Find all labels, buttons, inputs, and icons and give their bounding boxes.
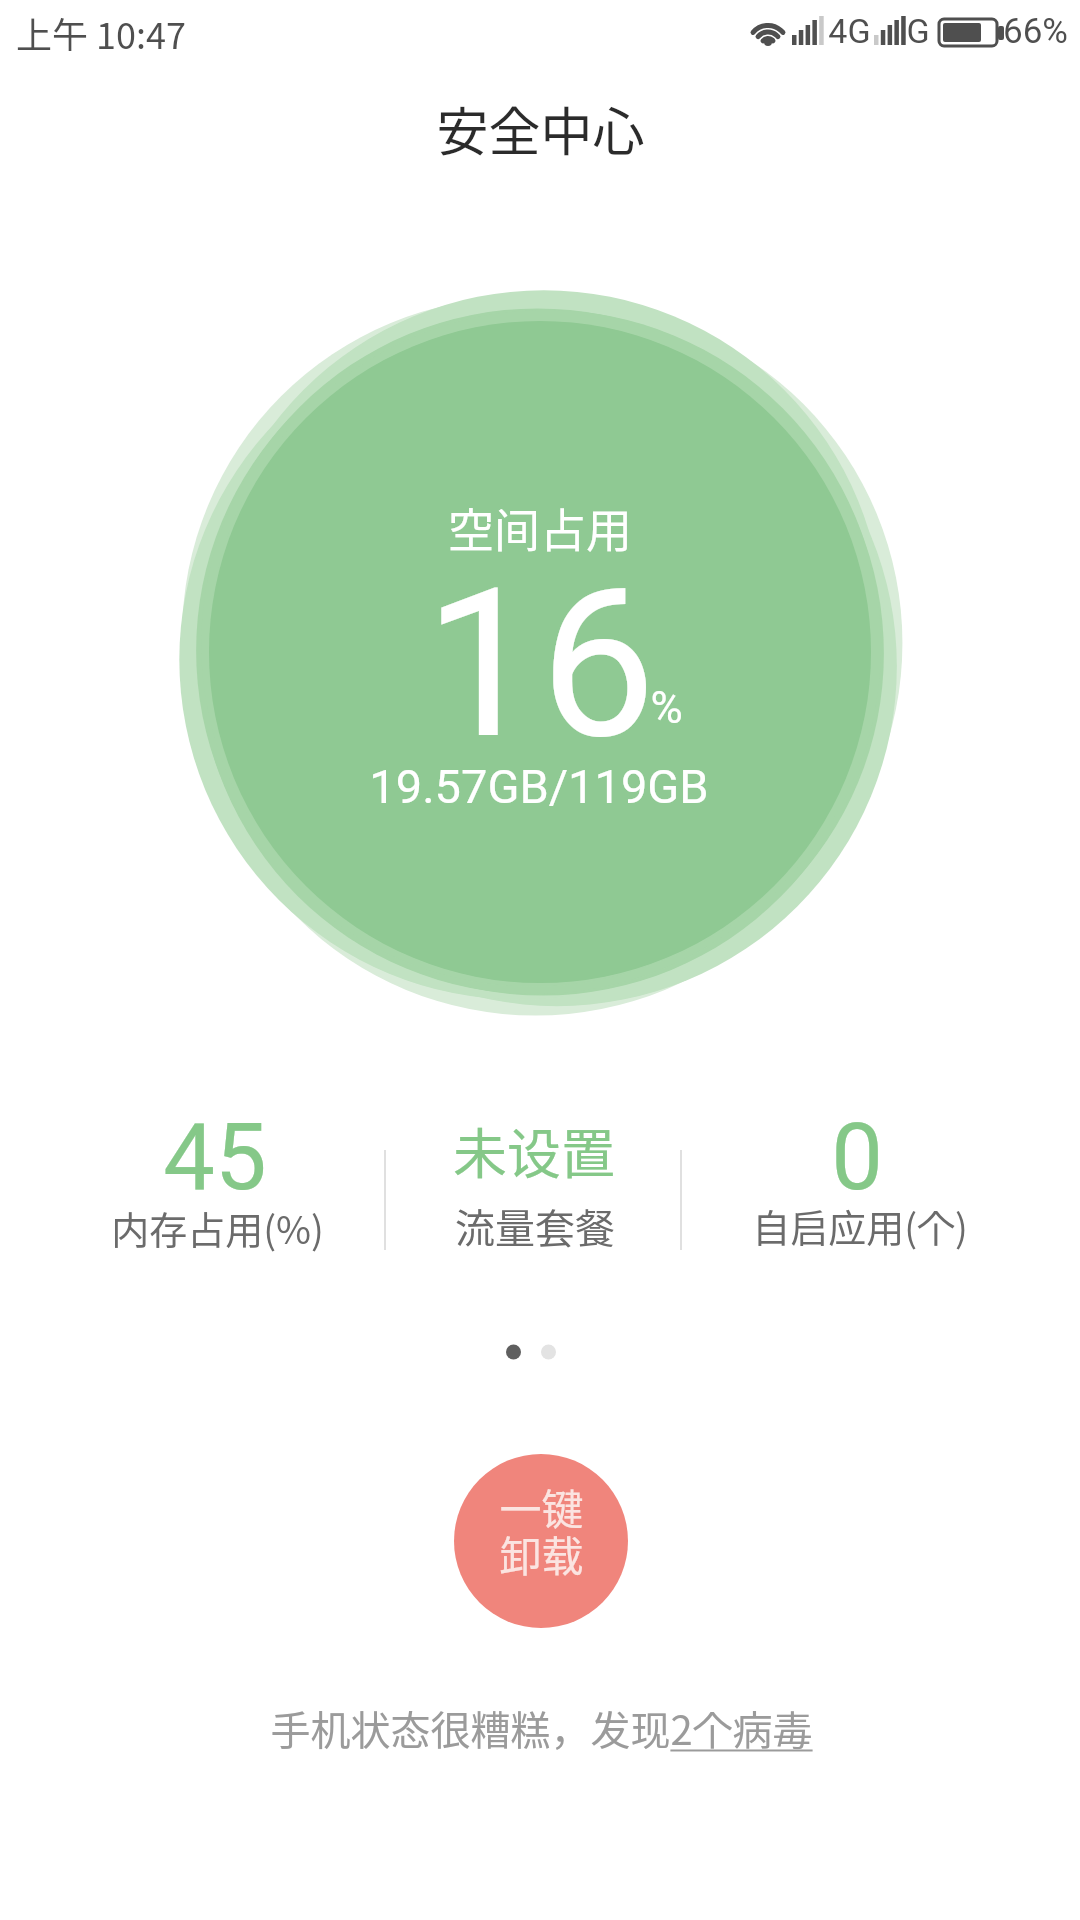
staticText: 安全中心 (436, 91, 645, 161)
staticText: G (906, 11, 930, 51)
staticText: 内存占用(%) (111, 1200, 324, 1254)
staticText: 45 (163, 1104, 267, 1212)
staticText: 空间占用 (448, 494, 632, 554)
staticText: 66% (1003, 11, 1068, 52)
staticText: 4G (828, 11, 871, 51)
staticText: 未设置 (453, 1111, 615, 1181)
staticText: 0 (831, 1104, 883, 1212)
button[interactable] (415, 1105, 655, 1260)
staticText: 16 (424, 544, 656, 784)
staticText: 上午 10:47 (16, 7, 186, 51)
staticText: 一键 卸载 (499, 1476, 584, 1584)
staticText: 19.57GB/119GB (369, 759, 709, 814)
button[interactable] (95, 1105, 340, 1260)
button[interactable] (715, 1105, 975, 1260)
staticText: 手机状态很糟糕，发现2个病毒 (270, 1699, 813, 1757)
button[interactable]: 一键 卸载 (454, 1454, 628, 1628)
button[interactable]: 手机状态很糟糕，发现2个病毒 (261, 1696, 821, 1760)
staticText: % (650, 682, 683, 734)
staticText: 自启应用(个) (752, 1198, 968, 1252)
staticText: 流量套餐 (455, 1197, 615, 1251)
